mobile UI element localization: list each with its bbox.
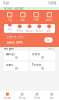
staticText: For you [4, 47, 14, 50]
button[interactable]: Card [29, 12, 43, 21]
staticText: Fund [36, 29, 43, 33]
button[interactable]: Top up [5, 23, 15, 34]
staticText: Top up [7, 27, 12, 34]
button[interactable]: Bills [15, 24, 25, 33]
button[interactable]: Points [30, 62, 55, 71]
button[interactable]: Shop [25, 24, 34, 33]
button[interactable]: Chat [29, 93, 44, 100]
staticText: Service update [4, 7, 24, 10]
button[interactable]: Loans [4, 62, 29, 71]
staticText: Points [32, 63, 41, 67]
staticText: Bills [17, 29, 23, 33]
staticText: Shop [19, 96, 26, 100]
staticText: Chat [34, 96, 40, 100]
staticText: Me [50, 96, 54, 100]
button[interactable]: Shop [15, 93, 30, 100]
staticText: Save 30% [6, 39, 23, 45]
staticText: Pay [8, 18, 12, 21]
button[interactable]: Home [0, 93, 15, 100]
staticText: Savings [5, 52, 14, 56]
button[interactable]: Limited offer [4, 35, 55, 45]
button[interactable]: Invest [30, 51, 55, 60]
staticText: Home [3, 96, 11, 100]
button[interactable]: Pay [3, 12, 16, 21]
staticText: Card [33, 18, 39, 21]
staticText: More [46, 18, 53, 21]
button[interactable]: All [44, 24, 54, 33]
staticText: 100% [48, 2, 56, 5]
staticText: Shop [26, 29, 33, 33]
staticText: 9:41 [3, 2, 10, 5]
staticText: Loans [5, 63, 12, 67]
button[interactable]: Savings [4, 51, 29, 60]
button[interactable]: Scan [16, 12, 29, 21]
staticText: All [47, 29, 51, 33]
staticText: Scan [20, 18, 25, 21]
staticText: Invest [32, 52, 40, 56]
staticText: Go [46, 38, 50, 42]
button[interactable]: Fund [34, 24, 44, 33]
button[interactable]: Me [44, 93, 59, 100]
button[interactable]: More [43, 12, 56, 21]
staticText: Limited offer [6, 35, 24, 39]
staticText: More [48, 47, 55, 50]
